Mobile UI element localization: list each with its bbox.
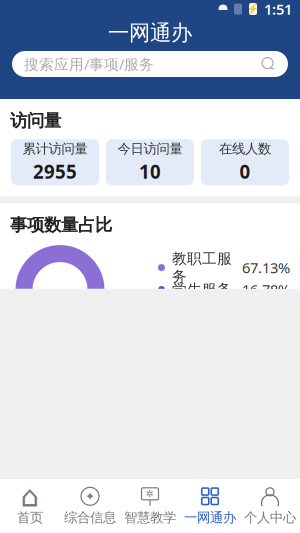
staticText: 智慧教学 [124,509,176,526]
staticText: 67.13% [242,258,290,277]
staticText: 今日访问量 [117,141,182,157]
staticText: 一网通办 [184,509,236,526]
staticText: 访问量 [10,110,61,131]
button[interactable]: 个人中心 [240,479,300,533]
staticText: 学生服务 [172,281,232,299]
button[interactable]: 一网通办 [180,479,240,533]
staticText: ✲ [146,488,154,499]
button[interactable]: ✦ [60,479,120,533]
staticText: 在线人数 [219,141,271,157]
staticText: 16.78% [242,280,290,299]
staticText: 0 [239,159,250,184]
staticText: 2955 [33,159,77,184]
staticText: 教职工服务 [172,250,232,286]
staticText: 事项数量占比 [10,214,112,236]
button[interactable]: 在线人数 [201,139,289,185]
button[interactable]: ✲ [120,479,180,533]
staticText: 一网通办 [108,20,192,46]
staticText: 综合信息 [64,509,116,526]
staticText: ⌂ [20,480,39,513]
staticText: 搜索应用/事项/服务 [24,54,154,74]
staticText: 个人中心 [244,509,296,526]
button[interactable]: 今日访问量 [106,139,194,185]
staticText: 累计访问量 [22,141,87,157]
staticText: 1:51 [264,0,292,19]
staticText: 首页 [17,509,43,526]
staticText: ⚡ [247,4,259,14]
button[interactable]: 累计访问量 [11,139,99,185]
staticText: ✦ [85,489,95,503]
staticText: 10 [139,159,161,184]
button[interactable]: ⌂ [0,479,60,533]
button[interactable]: 搜索应用/事项/服务 [12,51,288,77]
